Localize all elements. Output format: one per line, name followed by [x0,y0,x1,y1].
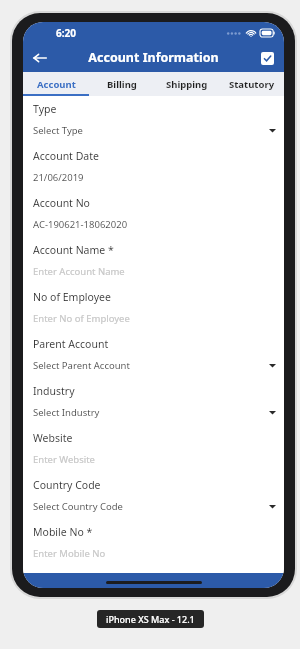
button[interactable]: Industry [28,378,279,425]
button[interactable]: Account Date [28,143,279,190]
staticText: Industry [33,384,75,398]
staticText: Enter Account Name [33,265,276,278]
button[interactable]: Billing [89,72,154,96]
staticText: Account Date [33,149,99,163]
staticText: Account No [33,196,90,210]
staticText: Country Code [33,478,101,492]
staticText: Account Name * [33,243,114,257]
button[interactable]: Mobile No * [28,519,279,566]
button[interactable]: Account [23,72,89,96]
button[interactable]: Parent Account [28,331,279,378]
staticText: Website [33,431,73,445]
button[interactable]: Statutory [219,72,284,96]
staticText: Select Type [33,124,269,137]
staticText: iPhone XS Max - 12.1 [106,613,195,625]
staticText: Statutory [229,78,275,91]
staticText: Enter No of Employee [33,312,276,325]
staticText: Enter Mobile No [33,547,276,560]
staticText: Mobile No * [33,525,93,539]
button[interactable]: Country Code [28,472,279,519]
button[interactable]: Website [28,425,279,472]
button[interactable]: Shipping [154,72,219,96]
staticText: Account [37,78,76,91]
button[interactable]: Confirm [256,47,278,69]
button[interactable]: Back [27,45,53,71]
staticText: Select Parent Account [33,359,269,372]
staticText: Select Industry [33,406,269,419]
staticText: Parent Account [33,337,109,351]
staticText: AC-190621-18062020 [33,218,276,231]
button[interactable]: Account No [28,190,279,237]
staticText: Billing [107,78,137,91]
button[interactable]: Type [28,96,279,143]
staticText: No of Employee [33,290,111,304]
button[interactable]: Account Name * [28,237,279,284]
staticText: Select Country Code [33,500,269,513]
staticText: 21/06/2019 [33,171,276,184]
button[interactable]: No of Employee [28,284,279,331]
staticText: Enter Website [33,453,276,466]
staticText: 6:20 [56,26,76,40]
staticText: Shipping [166,78,208,91]
staticText: Type [33,102,57,116]
staticText: Account Information [88,49,219,66]
